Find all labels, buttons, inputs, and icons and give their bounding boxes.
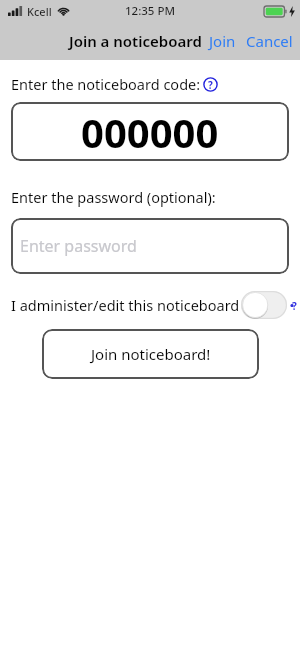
staticText: Join	[209, 31, 236, 51]
staticText: Cancel	[246, 31, 293, 51]
button[interactable]: Join noticeboard!	[42, 329, 259, 379]
button[interactable]: 000000	[11, 102, 289, 161]
button[interactable]: Cancel	[245, 27, 294, 55]
staticText: Kcell	[27, 4, 52, 19]
staticText: Join noticeboard!	[91, 344, 211, 364]
button[interactable]: Enter password	[11, 218, 289, 274]
staticText: ?	[208, 78, 213, 92]
button[interactable]: Help	[202, 76, 219, 93]
staticText: Enter password	[20, 235, 137, 257]
button[interactable]: I administer/edit this noticeboard toggl…	[241, 291, 287, 319]
staticText: Join a noticeboard	[69, 31, 202, 51]
staticText: 000000	[81, 105, 219, 159]
staticText: I administer/edit this noticeboard	[11, 295, 240, 315]
staticText: 12:35 PM	[125, 3, 176, 19]
staticText: Enter the password (optional):	[11, 187, 216, 207]
button[interactable]: Join	[208, 27, 237, 55]
staticText: Enter the noticeboard code:	[11, 74, 201, 94]
